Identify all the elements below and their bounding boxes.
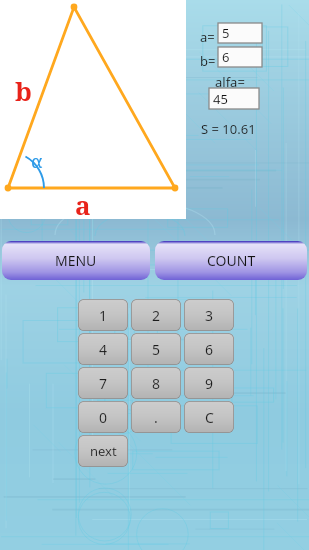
button[interactable]: 5 xyxy=(131,333,181,365)
button[interactable]: 4 xyxy=(78,333,128,365)
button[interactable]: 7 xyxy=(78,367,128,399)
staticText: 0 xyxy=(99,408,108,427)
staticText: 5 xyxy=(222,24,230,42)
staticText: 9 xyxy=(205,374,214,393)
staticText: 2 xyxy=(152,306,161,325)
staticText: 45 xyxy=(213,90,228,108)
staticText: 7 xyxy=(99,374,108,393)
staticText: MENU xyxy=(55,251,97,270)
button[interactable]: 1 xyxy=(78,299,128,331)
button[interactable]: 0 xyxy=(78,401,128,433)
staticText: alfa= xyxy=(215,73,245,91)
staticText: 4 xyxy=(99,340,108,359)
button[interactable]: 3 xyxy=(184,299,234,331)
staticText: 5 xyxy=(152,340,161,359)
button[interactable]: C xyxy=(184,401,234,433)
staticText: b xyxy=(15,73,32,108)
button[interactable]: next xyxy=(78,435,128,467)
staticText: a xyxy=(75,187,91,222)
staticText: 8 xyxy=(152,374,161,393)
staticText: COUNT xyxy=(207,251,256,270)
button[interactable]: 2 xyxy=(131,299,181,331)
staticText: S = 10.61 xyxy=(201,120,256,138)
button[interactable]: 6 xyxy=(218,47,262,67)
staticText: . xyxy=(154,408,158,427)
staticText: α xyxy=(31,149,43,174)
button[interactable]: . xyxy=(131,401,181,433)
staticText: 3 xyxy=(205,306,214,325)
staticText: 6 xyxy=(205,340,214,359)
staticText: 6 xyxy=(222,48,230,66)
button[interactable]: COUNT xyxy=(155,241,307,280)
staticText: 1 xyxy=(99,306,108,325)
button[interactable]: 6 xyxy=(184,333,234,365)
staticText: C xyxy=(205,408,214,427)
staticText: b= xyxy=(200,52,216,70)
button[interactable]: 5 xyxy=(218,23,262,43)
button[interactable]: 9 xyxy=(184,367,234,399)
staticText: next xyxy=(90,442,117,460)
button[interactable]: 45 xyxy=(209,88,259,109)
button[interactable]: MENU xyxy=(2,241,150,280)
staticText: a= xyxy=(200,28,215,46)
button[interactable]: 8 xyxy=(131,367,181,399)
